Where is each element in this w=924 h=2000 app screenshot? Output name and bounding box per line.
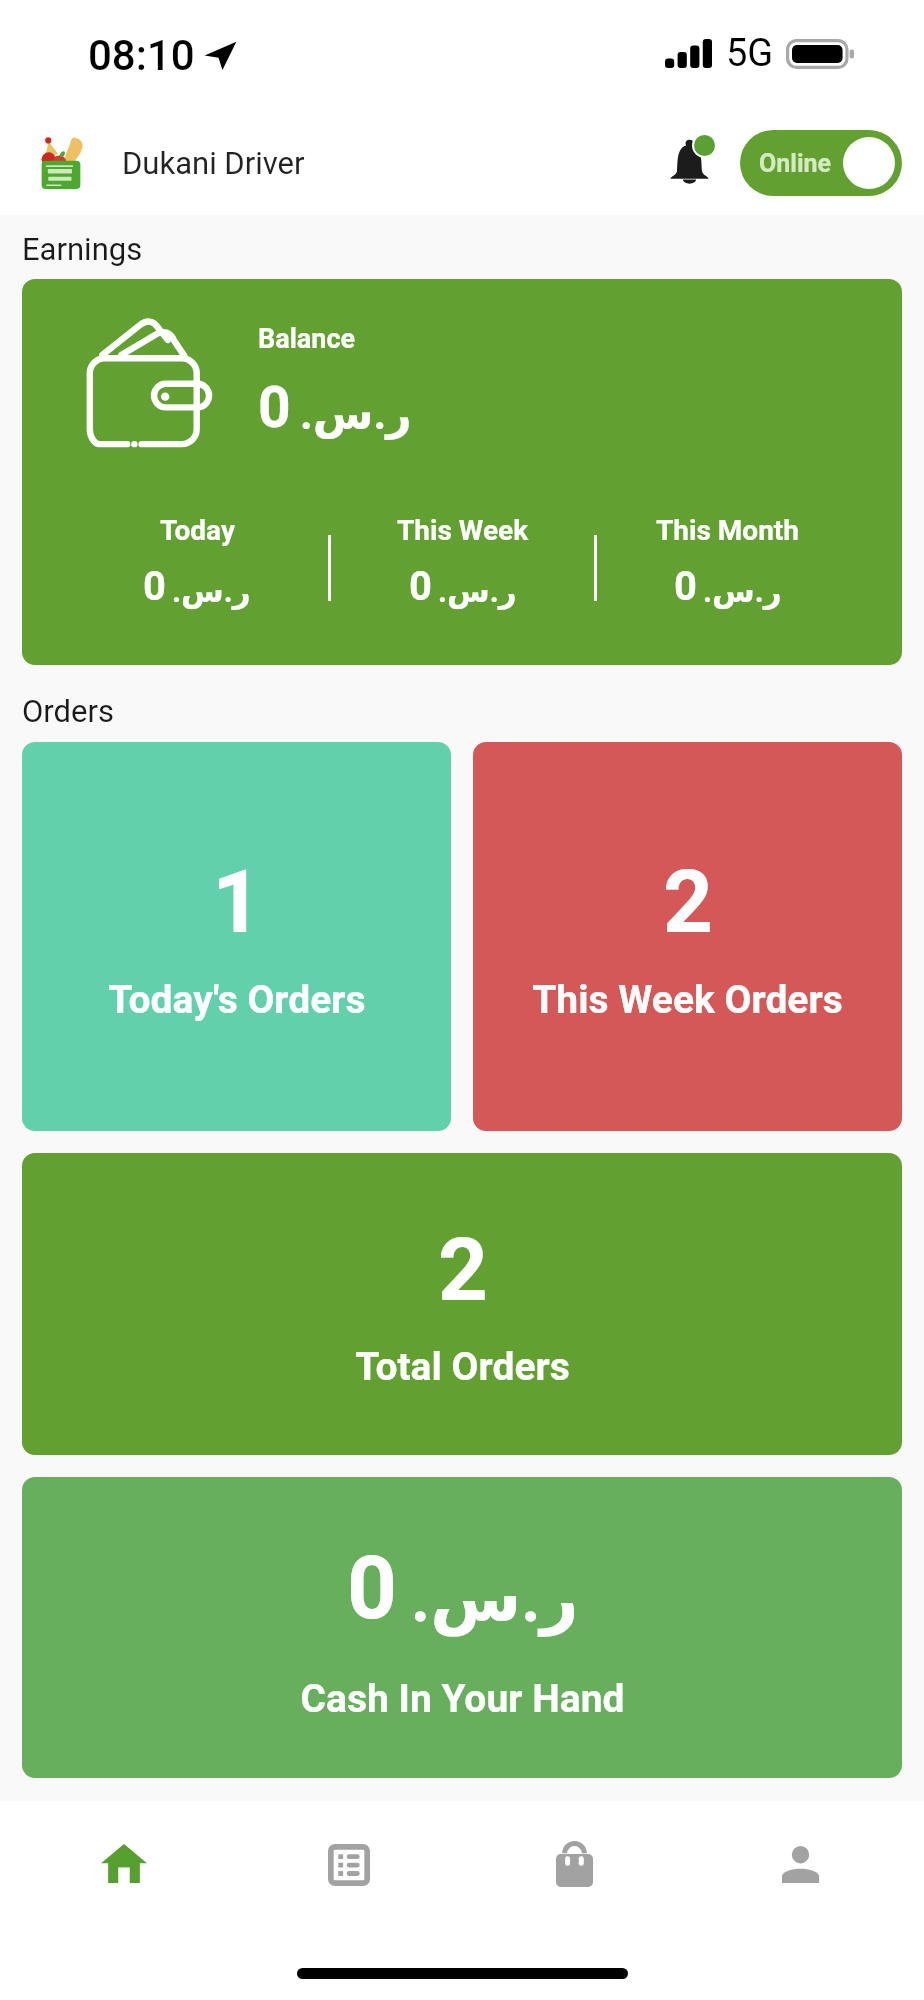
staticText: 0 — [347, 1537, 397, 1639]
button[interactable]: Profile — [687, 1801, 913, 1939]
button[interactable]: Home — [11, 1801, 236, 1939]
button[interactable]: 1 — [22, 742, 451, 1131]
staticText: Earnings — [22, 231, 143, 267]
staticText: 0 — [409, 563, 432, 610]
button[interactable]: Notifications — [646, 130, 724, 196]
staticText: 2 — [438, 1219, 488, 1321]
staticText: This Month — [656, 514, 799, 547]
staticText: ر.س.‏ — [300, 388, 412, 440]
staticText: ر.س.‏ — [703, 573, 782, 609]
staticText: 0 — [258, 374, 291, 441]
staticText: Online — [759, 149, 832, 178]
staticText: ر.س.‏ — [172, 573, 251, 609]
staticText: 08:10 — [88, 31, 195, 80]
staticText: 0 — [143, 563, 166, 610]
staticText: 1 — [212, 851, 262, 953]
button[interactable]: 2 — [22, 1153, 902, 1455]
staticText: 5G — [726, 31, 774, 76]
staticText: Dukani Driver — [122, 145, 305, 181]
staticText: This Week Orders — [532, 977, 843, 1023]
staticText: 0 — [674, 563, 697, 610]
staticText: Balance — [258, 323, 356, 355]
staticText: 2 — [663, 851, 713, 953]
staticText: Total Orders — [355, 1344, 570, 1390]
staticText: Today's Orders — [108, 977, 366, 1023]
staticText: This Week — [397, 514, 529, 547]
button[interactable]: Online — [740, 130, 902, 196]
staticText: Orders — [22, 693, 114, 729]
staticText: Today — [160, 514, 235, 547]
button[interactable]: Balance — [22, 279, 902, 665]
staticText: ر.س.‏ — [411, 1560, 579, 1637]
button[interactable]: Shop — [461, 1801, 687, 1939]
staticText: ر.س.‏ — [438, 573, 517, 609]
button[interactable]: 0 — [22, 1477, 902, 1778]
staticText: Cash In Your Hand — [300, 1676, 625, 1722]
button[interactable]: 2 — [473, 742, 902, 1131]
button[interactable]: Orders — [236, 1801, 461, 1939]
